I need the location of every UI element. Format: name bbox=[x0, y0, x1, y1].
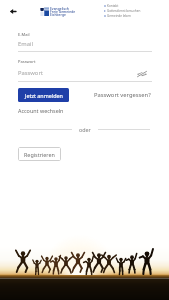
button[interactable]: Gottesdienst besuchen bbox=[104, 9, 141, 13]
staticText: Passwort bbox=[18, 59, 36, 64]
button[interactable]: Back bbox=[6, 5, 19, 18]
staticText: Kontakt bbox=[107, 4, 119, 8]
staticText: Passwort vergessen? bbox=[94, 91, 151, 99]
staticText: Registrieren bbox=[24, 151, 55, 158]
staticText: Jetzt anmelden bbox=[25, 92, 63, 99]
button[interactable]: Jetzt anmelden bbox=[18, 88, 69, 102]
staticText: E-Mail bbox=[18, 32, 30, 37]
staticText: Email bbox=[18, 40, 33, 48]
button[interactable]: Passwort vergessen? bbox=[93, 89, 152, 101]
button[interactable]: Account wechseln bbox=[18, 106, 64, 115]
staticText: Account wechseln bbox=[18, 107, 64, 114]
button[interactable]: Show password bbox=[136, 68, 147, 79]
staticText: Gemeinde leben bbox=[107, 14, 131, 18]
staticText: Gottesdienst besuchen bbox=[107, 9, 141, 13]
button[interactable]: Registrieren bbox=[18, 147, 61, 161]
staticText: oder bbox=[79, 126, 91, 133]
button[interactable]: Gemeinde leben bbox=[104, 14, 131, 18]
staticText: Evangelisch Freie Gemeinde Eichberge bbox=[50, 6, 76, 16]
button[interactable]: Kontakt bbox=[104, 4, 119, 8]
staticText: Passwort bbox=[18, 69, 43, 77]
